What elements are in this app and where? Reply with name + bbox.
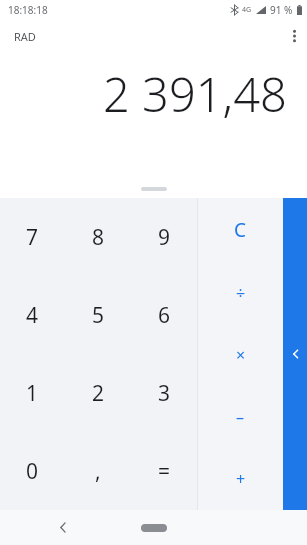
staticText: × bbox=[236, 344, 246, 366]
staticText: 5 bbox=[92, 301, 105, 330]
button[interactable]: 5 bbox=[65, 276, 131, 354]
staticText: 3 bbox=[158, 379, 171, 408]
button[interactable]: 8 bbox=[65, 198, 131, 276]
button[interactable]: , bbox=[65, 432, 131, 510]
button[interactable]: 9 bbox=[131, 198, 197, 276]
staticText: 4 bbox=[26, 301, 39, 330]
staticText: 1 bbox=[26, 379, 39, 408]
button[interactable]: More options bbox=[282, 24, 307, 48]
button[interactable]: × bbox=[198, 324, 283, 386]
button[interactable]: 0 bbox=[0, 432, 65, 510]
staticText: 18:18:18 bbox=[8, 3, 48, 17]
staticText: 2 bbox=[92, 379, 105, 408]
button[interactable]: C bbox=[198, 198, 283, 261]
button[interactable]: – bbox=[198, 386, 283, 448]
staticText: 91 % bbox=[270, 3, 293, 17]
button[interactable]: + bbox=[198, 448, 283, 510]
staticText: = bbox=[158, 457, 171, 486]
button[interactable]: ÷ bbox=[198, 261, 283, 324]
button[interactable]: 1 bbox=[0, 354, 65, 432]
button[interactable]: 4 bbox=[0, 276, 65, 354]
staticText: 7 bbox=[26, 223, 39, 252]
staticText: – bbox=[236, 406, 245, 428]
button[interactable]: Home bbox=[135, 518, 173, 538]
staticText: 4G bbox=[242, 5, 252, 15]
button[interactable]: Expand panel bbox=[283, 198, 307, 510]
button[interactable]: Drag handle bbox=[141, 187, 167, 191]
staticText: 0 bbox=[26, 457, 39, 486]
button[interactable]: 2 bbox=[65, 354, 131, 432]
button[interactable]: 6 bbox=[131, 276, 197, 354]
staticText: + bbox=[236, 468, 246, 490]
staticText: , bbox=[95, 457, 101, 486]
button[interactable]: 3 bbox=[131, 354, 197, 432]
staticText: C bbox=[234, 217, 247, 243]
staticText: 8 bbox=[92, 223, 105, 252]
button[interactable]: Back bbox=[52, 514, 74, 541]
staticText: ÷ bbox=[236, 282, 246, 304]
staticText: RAD bbox=[14, 29, 36, 44]
button[interactable]: = bbox=[131, 432, 197, 510]
button[interactable]: RAD bbox=[0, 24, 46, 49]
staticText: 2 391,48 bbox=[103, 62, 287, 126]
staticText: 6 bbox=[158, 301, 171, 330]
button[interactable]: 7 bbox=[0, 198, 65, 276]
staticText: 9 bbox=[158, 223, 171, 252]
